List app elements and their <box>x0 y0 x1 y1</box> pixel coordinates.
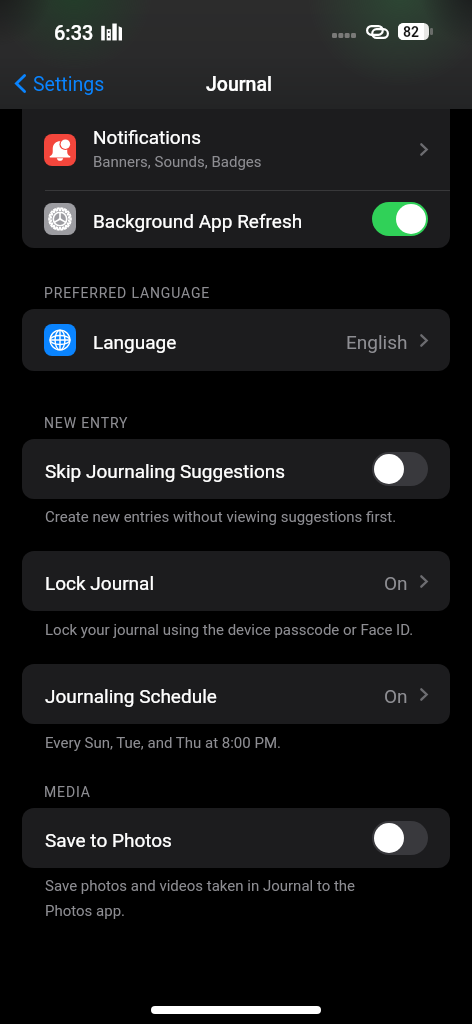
staticText: Save to Photos <box>45 829 172 851</box>
staticText: Lock Journal <box>45 572 155 594</box>
staticText: Every Sun, Tue, and Thu at 8:00 PM. <box>45 734 465 752</box>
staticText: Journal <box>206 73 273 96</box>
staticText: Settings <box>33 73 105 96</box>
staticText: 82 <box>403 24 420 40</box>
button[interactable]: Skip Journaling Suggestions <box>22 439 450 499</box>
staticText: English <box>346 331 408 353</box>
staticText: Save photos and videos taken in Journal … <box>45 877 375 919</box>
button[interactable]: Background App Refresh <box>22 189 450 248</box>
button[interactable]: Save to Photos <box>372 821 428 855</box>
staticText: On <box>384 572 408 594</box>
staticText: Banners, Sounds, Badges <box>93 153 262 171</box>
staticText: MEDIA <box>44 784 91 800</box>
button[interactable]: Background App Refresh <box>372 202 428 236</box>
button[interactable]: Save to Photos <box>22 808 450 868</box>
staticText: On <box>384 685 408 707</box>
staticText: Background App Refresh <box>93 210 303 232</box>
staticText: NEW ENTRY <box>44 415 129 431</box>
staticText: Journaling Schedule <box>45 685 217 707</box>
button[interactable]: Language <box>22 309 450 371</box>
button[interactable]: Journaling Schedule <box>22 664 450 724</box>
button[interactable]: Lock Journal <box>22 551 450 611</box>
staticText: Notifications <box>93 126 202 148</box>
staticText: 6:33 <box>54 21 94 44</box>
staticText: Create new entries without viewing sugge… <box>45 508 465 526</box>
button[interactable]: Skip Journaling Suggestions <box>372 452 428 486</box>
staticText: Skip Journaling Suggestions <box>45 460 286 482</box>
button[interactable]: Settings <box>0 66 115 101</box>
button[interactable]: Notifications <box>22 109 450 190</box>
staticText: Lock your journal using the device passc… <box>45 621 465 639</box>
staticText: PREFERRED LANGUAGE <box>44 285 211 301</box>
staticText: Language <box>93 331 177 353</box>
